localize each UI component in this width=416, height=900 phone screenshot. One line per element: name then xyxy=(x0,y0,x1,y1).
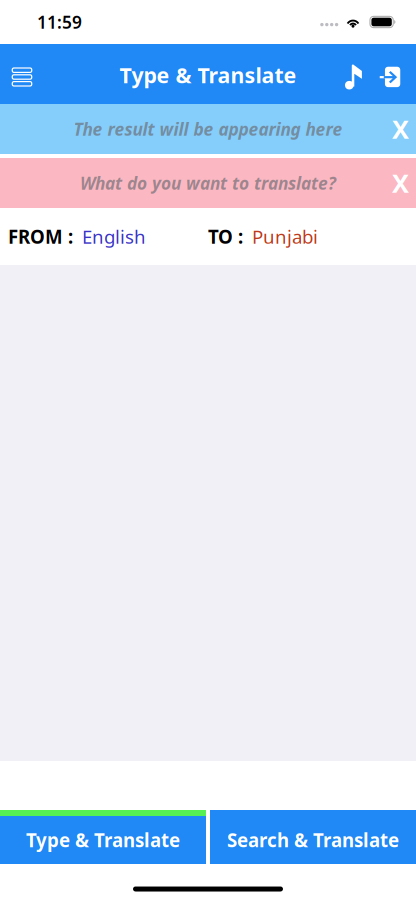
staticText: Search & Translate xyxy=(227,828,399,852)
button[interactable]: Sign in xyxy=(372,53,408,101)
staticText: English xyxy=(82,224,146,249)
button[interactable]: Clear text xyxy=(385,158,416,208)
staticText: The result will be appearing here xyxy=(73,117,342,140)
button[interactable]: Clear text xyxy=(385,104,416,154)
button[interactable]: Punjabi xyxy=(243,219,327,253)
button[interactable]: Menu xyxy=(1,53,43,101)
staticText: 11:59 xyxy=(37,10,82,33)
staticText: Type & Translate xyxy=(119,61,296,89)
staticText: FROM : xyxy=(8,224,73,249)
staticText: X xyxy=(392,112,409,146)
button[interactable]: Search & Translate xyxy=(210,810,416,864)
staticText: Type & Translate xyxy=(26,828,180,852)
button[interactable]: Type & Translate xyxy=(0,810,206,864)
staticText: What do you want to translate? xyxy=(80,171,336,194)
button[interactable]: Text to speech xyxy=(336,53,372,101)
staticText: Punjabi xyxy=(252,224,318,249)
staticText: X xyxy=(392,166,409,200)
button[interactable]: English xyxy=(73,219,155,253)
staticText: TO : xyxy=(208,224,243,249)
